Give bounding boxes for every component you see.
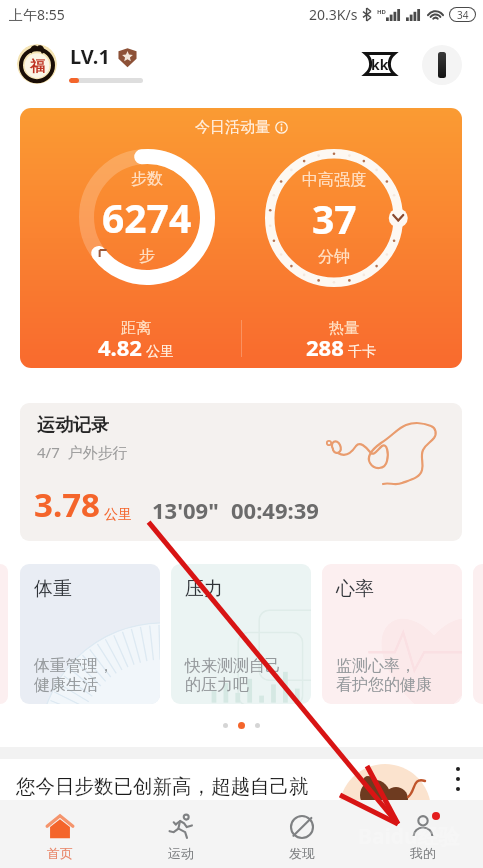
staticText: 13'09" [152, 495, 219, 525]
staticText: 20.3K/s [309, 5, 358, 24]
staticText: 心率 [336, 577, 374, 601]
staticText: 运动记录 [37, 414, 109, 437]
button[interactable]: Profile avatar [17, 44, 57, 84]
staticText: LV.1 [70, 43, 110, 70]
staticText: 福 [30, 57, 45, 76]
staticText: 中高强度 [302, 170, 366, 190]
button[interactable]: 您今日步数已创新高，超越自己就 [0, 759, 483, 800]
staticText: 公里 [104, 506, 132, 524]
button[interactable]: More options [448, 761, 468, 797]
button[interactable]: 今日活动量 [20, 108, 462, 368]
button[interactable]: 运动记录 [20, 403, 462, 541]
staticText: 热量 [329, 319, 359, 338]
staticText: 压力 [185, 577, 223, 601]
staticText: 公里 [146, 343, 174, 361]
staticText: 288 [306, 332, 344, 362]
staticText: 3.78 [34, 482, 100, 527]
staticText: 4/7 户外步行 [37, 442, 128, 462]
staticText: 体重管理， 健康生活 [34, 656, 114, 695]
staticText: 运动 [168, 845, 194, 861]
button[interactable]: 首页 [0, 800, 120, 868]
staticText: 00:49:39 [231, 495, 319, 525]
staticText: 距离 [121, 319, 151, 338]
staticText: 4.82 [98, 332, 142, 362]
button[interactable]: My device [422, 45, 462, 85]
button[interactable]: Coupons [359, 44, 401, 84]
staticText: 今日活动量 [195, 118, 270, 137]
staticText: kk [371, 55, 389, 74]
button[interactable]: 心率 [322, 564, 462, 704]
staticText: 首页 [47, 845, 73, 861]
button[interactable]: 发现 [241, 800, 362, 868]
staticText: 分钟 [318, 247, 350, 267]
staticText: 上午8:55 [9, 5, 65, 24]
staticText: 步 [139, 246, 155, 266]
staticText: HD [377, 8, 386, 16]
staticText: 快来测测自己 的压力吧 [185, 656, 281, 695]
button[interactable]: 体重 [20, 564, 160, 704]
button[interactable]: 我的 [362, 800, 483, 868]
button[interactable]: 压力 [171, 564, 311, 704]
staticText: 千卡 [348, 343, 376, 361]
staticText: Baidu经验 [358, 822, 460, 851]
staticText: 监测心率， 看护您的健康 [336, 656, 432, 695]
staticText: 37 [312, 192, 357, 245]
staticText: 体重 [34, 577, 72, 601]
button[interactable]: 运动 [120, 800, 241, 868]
staticText: 34 [457, 8, 469, 21]
staticText: 我的 [410, 845, 436, 861]
staticText: 发现 [289, 845, 315, 861]
staticText: 6274 [102, 191, 192, 244]
staticText: 您今日步数已创新高，超越自己就 [16, 774, 309, 799]
staticText: 步数 [131, 169, 163, 189]
